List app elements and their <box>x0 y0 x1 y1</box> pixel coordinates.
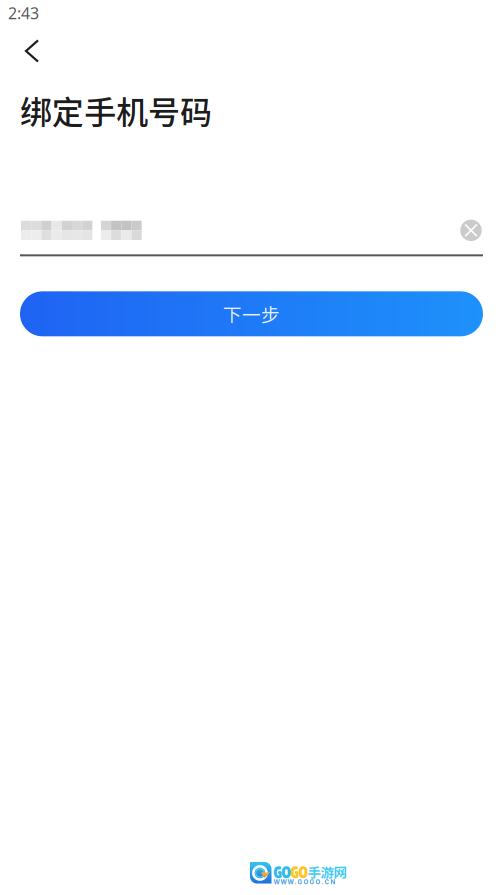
staticText: W W W . G O G O . C N <box>273 878 335 886</box>
button[interactable]: Back <box>13 26 51 64</box>
staticText: 绑定手机号码 <box>20 87 212 133</box>
staticText: 手游网 <box>307 862 346 882</box>
button[interactable]: 下一步 <box>20 291 483 336</box>
staticText: 2:43 <box>8 2 39 24</box>
staticText: GO <box>273 863 290 882</box>
button[interactable]: Clear text <box>454 213 488 247</box>
staticText: GO <box>290 863 307 882</box>
staticText: 下一步 <box>223 300 280 327</box>
